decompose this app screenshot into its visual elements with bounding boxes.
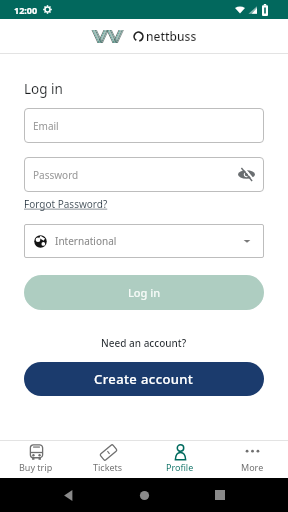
button[interactable]: Need an account?	[101, 336, 187, 350]
button[interactable]: Forgot Password?	[24, 197, 108, 211]
staticText: 12:00	[14, 4, 38, 16]
button[interactable]: Password	[24, 157, 264, 192]
button[interactable]: Email	[24, 108, 264, 143]
button[interactable]	[63, 490, 74, 501]
staticText: Tickets	[93, 461, 123, 473]
staticText: More	[241, 461, 264, 473]
button[interactable]	[139, 490, 150, 501]
button[interactable]: International	[24, 224, 264, 258]
staticText: Create account	[94, 370, 194, 388]
staticText: nettbuss	[146, 28, 197, 44]
button[interactable]: Profile	[144, 441, 216, 478]
staticText: Log in	[24, 80, 63, 98]
staticText: Buy trip	[19, 461, 53, 473]
button[interactable]: More	[216, 441, 288, 478]
staticText: Log in	[128, 285, 161, 300]
button[interactable]: Create account	[24, 362, 264, 396]
staticText: Profile	[166, 461, 194, 473]
staticText: Email	[33, 119, 59, 133]
button[interactable]: Buy trip	[0, 441, 72, 478]
staticText: Password	[33, 168, 79, 182]
staticText: International	[55, 234, 117, 248]
button[interactable]: Tickets	[72, 441, 144, 478]
button[interactable]: Log in	[24, 275, 264, 310]
